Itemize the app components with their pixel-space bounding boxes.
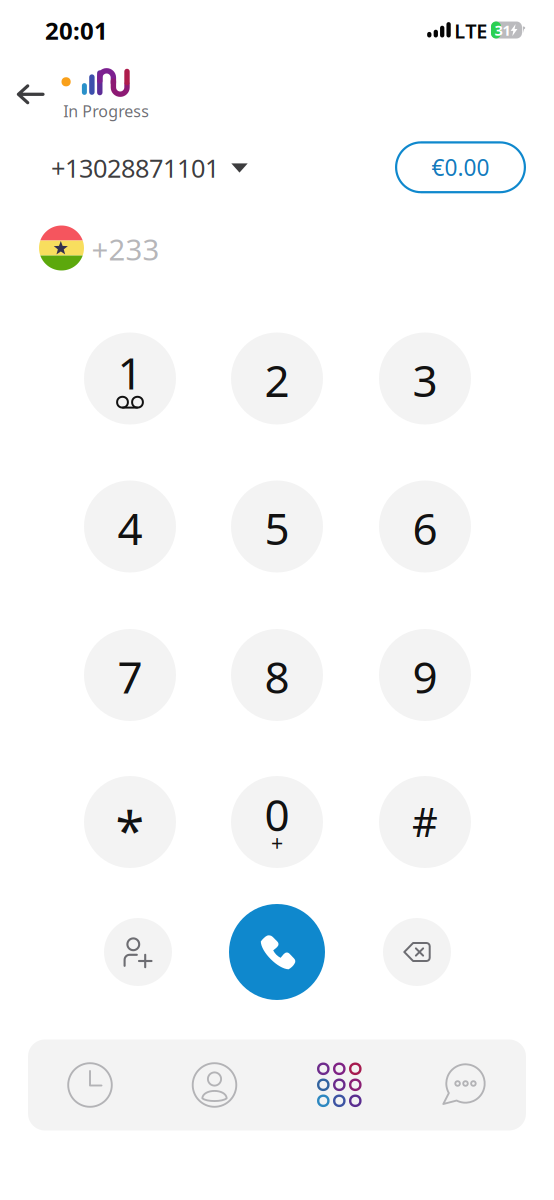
button[interactable]: Messages [402,1039,526,1130]
button[interactable]: Recents [28,1039,152,1130]
button[interactable]: 9 [379,629,471,721]
staticText: 7 [117,647,142,706]
button[interactable]: 6 [379,480,471,572]
button[interactable]: 5 [231,480,323,572]
button[interactable]: Keypad [277,1039,402,1130]
staticText: + [271,828,283,857]
staticText: 9 [412,647,437,706]
staticText: 1 [117,343,142,402]
staticText: 20:01 [45,15,108,46]
staticText: +233 [91,229,159,268]
button[interactable]: €0.00 [395,141,526,193]
button[interactable]: * [84,776,176,868]
button[interactable]: 7 [84,629,176,721]
staticText: 2 [264,351,289,409]
button[interactable]: Add contact [104,918,172,986]
button[interactable]: Contacts [152,1039,277,1130]
button[interactable]: 4 [84,480,176,572]
button[interactable]: Back [8,71,54,117]
button[interactable]: Delete [383,918,451,986]
staticText: 8 [264,647,289,706]
staticText: 0 [264,785,289,843]
button[interactable]: 1 [84,332,176,424]
staticText: 6 [412,499,437,557]
staticText: €0.00 [431,152,489,182]
button[interactable]: 0 [231,776,323,868]
staticText: # [412,795,438,848]
button[interactable]: Call [229,904,325,1000]
button[interactable]: 8 [231,629,323,721]
staticText: 4 [117,499,142,557]
button[interactable]: # [379,776,471,868]
staticText: 3 [412,351,437,409]
staticText: * [115,795,144,864]
staticText: 31 [494,20,510,40]
staticText: +13028871101 [51,151,219,185]
staticText: In Progress [63,100,149,122]
button[interactable]: +13028871101 [51,151,248,185]
button[interactable]: 2 [231,332,323,424]
button[interactable]: 3 [379,332,471,424]
staticText: LTE [454,17,487,44]
staticText: 5 [264,499,289,557]
